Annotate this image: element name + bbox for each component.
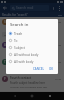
button[interactable]: Back [12, 93, 18, 99]
button[interactable]: Trash [6, 30, 58, 37]
staticText: OK [49, 67, 54, 71]
staticText: Trash [14, 32, 23, 36]
button[interactable]: S [0, 17, 64, 40]
staticText: More preview text sitting here [10, 51, 44, 54]
button[interactable]: More options [57, 6, 62, 11]
button[interactable]: A [0, 40, 64, 57]
staticText: 12:30 [55, 60, 62, 63]
button[interactable]: Subject [6, 44, 58, 51]
staticText: All with body [14, 60, 34, 64]
button[interactable]: All without body [6, 51, 58, 58]
staticText: Results for "search" [2, 13, 28, 17]
staticText: 12:30 [55, 77, 62, 80]
staticText: To [14, 39, 18, 43]
staticText: S [4, 20, 6, 24]
staticText: Third sender [10, 59, 29, 63]
staticText: Search mail [16, 6, 34, 10]
staticText: Fourth contact [10, 76, 32, 80]
button[interactable]: OK [47, 66, 56, 72]
staticText: Another line of preview body text [10, 85, 48, 88]
staticText: Some other subject line [10, 47, 39, 51]
button[interactable]: Results for "search" [0, 12, 64, 17]
button[interactable]: T [0, 57, 64, 74]
staticText: CANCEL [33, 67, 44, 71]
staticText: Third subject headline [10, 64, 37, 68]
staticText: Search all [4, 33, 15, 36]
button[interactable]: Home [29, 93, 35, 99]
staticText: F [4, 77, 6, 81]
staticText: 12:30 [55, 43, 62, 46]
staticText: 12:30 [55, 20, 62, 23]
button[interactable]: Search mail [10, 5, 49, 11]
staticText: Subject [14, 46, 25, 50]
staticText: Search in [10, 22, 29, 28]
button[interactable]: CANCEL [31, 66, 46, 72]
staticText: Fourth subject headline here [10, 81, 45, 85]
staticText: A [4, 43, 6, 47]
button[interactable]: All with body [6, 58, 58, 65]
staticText: Subject of this message [10, 24, 39, 28]
button[interactable]: Voice search [51, 6, 56, 11]
button[interactable]: Search all [2, 32, 17, 37]
staticText: T [4, 60, 6, 64]
button[interactable]: Recent apps [47, 93, 53, 99]
button[interactable]: F [0, 74, 64, 91]
button[interactable]: Back [2, 5, 8, 11]
staticText: All without body [14, 53, 39, 57]
staticText: Additional preview content line [10, 68, 45, 71]
button[interactable]: To [6, 37, 58, 44]
